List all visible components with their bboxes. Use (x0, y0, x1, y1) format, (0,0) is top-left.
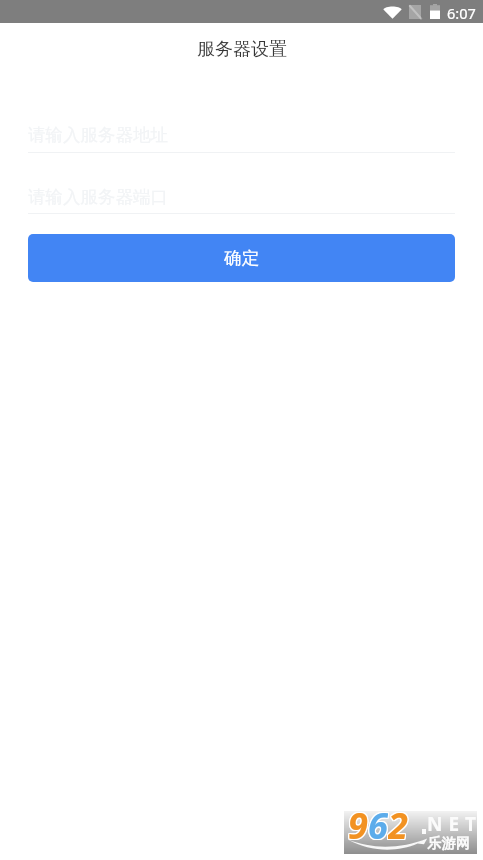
staticText: 6 (367, 802, 387, 845)
staticText: 6 (369, 800, 389, 843)
staticText: 9 (347, 802, 367, 845)
other: Wi-Fi signal (383, 4, 402, 19)
staticText: 2 (387, 801, 407, 844)
button[interactable]: 请输入服务器地址 (28, 124, 455, 146)
staticText: 9 (348, 802, 368, 845)
staticText: 2 (388, 801, 408, 844)
staticText: 6 (367, 800, 387, 843)
staticText: 2 (388, 800, 408, 843)
staticText: 9 (348, 800, 368, 843)
staticText: 2 (389, 800, 409, 843)
staticText: 确定 (224, 247, 259, 269)
staticText: 9 (349, 800, 369, 843)
staticText: 服务器设置 (197, 38, 287, 61)
staticText: 6 (367, 801, 387, 844)
other: No SIM card (409, 5, 421, 19)
staticText: 9 (348, 801, 368, 844)
staticText: 6 (369, 802, 389, 845)
staticText: 2 (387, 800, 407, 843)
staticText: 6 (369, 801, 389, 844)
staticText: 乐游网 (427, 835, 471, 853)
button[interactable]: 确定 (28, 234, 455, 282)
staticText: 请输入服务器端口 (28, 186, 168, 208)
staticText: 2 (387, 802, 407, 845)
staticText: 2 (389, 802, 409, 845)
staticText: 请输入服务器地址 (28, 124, 168, 146)
staticText: 9 (349, 801, 369, 844)
staticText: NET (427, 811, 483, 837)
staticText: 9 (347, 801, 367, 844)
staticText: 6 (368, 801, 388, 844)
staticText: 9 (347, 800, 367, 843)
other: Battery (430, 4, 440, 19)
staticText: 2 (389, 801, 409, 844)
staticText: 6:07 (447, 3, 476, 23)
staticText: 2 (388, 802, 408, 845)
staticText: 9 (349, 802, 369, 845)
staticText: 6 (368, 800, 388, 843)
button[interactable]: 请输入服务器端口 (28, 186, 455, 208)
staticText: 6 (368, 802, 388, 845)
